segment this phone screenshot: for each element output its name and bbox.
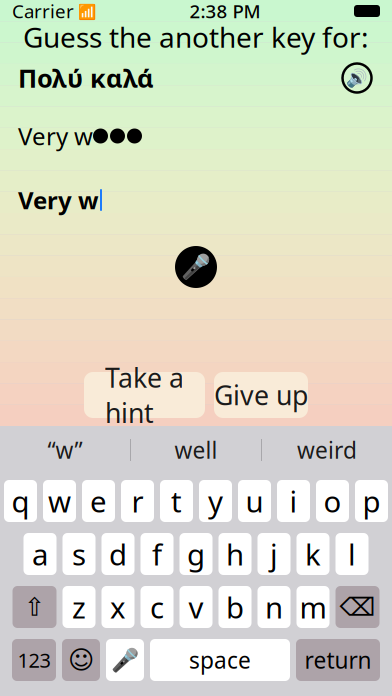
staticText: 📶: [74, 1, 96, 21]
button[interactable]: l: [335, 533, 368, 575]
button[interactable]: c: [140, 586, 173, 628]
button[interactable]: o: [316, 480, 349, 522]
button[interactable]: Delete: [335, 586, 379, 628]
button[interactable]: return: [296, 639, 380, 681]
button[interactable]: a: [23, 533, 56, 575]
staticText: h: [226, 534, 244, 573]
staticText: weird: [297, 435, 357, 465]
button[interactable]: weird: [262, 426, 392, 474]
button[interactable]: space: [150, 639, 290, 681]
button[interactable]: j: [257, 533, 290, 575]
button[interactable]: e: [82, 480, 115, 522]
staticText: w: [48, 481, 71, 520]
button[interactable]: r: [121, 480, 154, 522]
staticText: 🔊: [346, 68, 368, 88]
button[interactable]: 123: [12, 639, 56, 681]
staticText: well: [174, 435, 217, 465]
button[interactable]: p: [355, 480, 388, 522]
staticText: Very w: [18, 184, 99, 216]
staticText: o: [323, 481, 341, 520]
staticText: q: [11, 481, 29, 520]
button[interactable]: w: [43, 480, 76, 522]
button[interactable]: well: [131, 426, 261, 474]
staticText: y: [208, 481, 223, 520]
staticText: j: [270, 534, 278, 573]
staticText: ⇧: [24, 593, 45, 621]
button[interactable]: t: [160, 480, 193, 522]
staticText: ⌫: [339, 593, 375, 621]
staticText: x: [110, 587, 126, 626]
button[interactable]: v: [179, 586, 212, 628]
staticText: v: [188, 587, 203, 626]
button[interactable]: Shift: [12, 586, 56, 628]
staticText: return: [304, 645, 371, 675]
button[interactable]: Dictation: [106, 639, 144, 681]
button[interactable]: f: [140, 533, 173, 575]
staticText: m: [299, 587, 326, 626]
button[interactable]: Emoji: [62, 639, 100, 681]
staticText: Take a hint: [105, 360, 184, 430]
button[interactable]: Record answer: [172, 243, 220, 291]
staticText: s: [72, 534, 86, 573]
staticText: 2:38 PM: [189, 0, 260, 23]
staticText: z: [72, 587, 86, 626]
staticText: 🎤: [181, 253, 211, 281]
staticText: t: [171, 481, 182, 520]
staticText: f: [152, 534, 162, 573]
button[interactable]: b: [218, 586, 251, 628]
staticText: n: [265, 587, 283, 626]
staticText: k: [305, 534, 321, 573]
staticText: Very w: [18, 120, 93, 152]
button[interactable]: m: [296, 586, 329, 628]
button[interactable]: Take a hint: [84, 372, 205, 418]
button[interactable]: n: [257, 586, 290, 628]
staticText: u: [245, 481, 263, 520]
staticText: e: [90, 481, 107, 520]
staticText: g: [187, 534, 205, 573]
staticText: r: [131, 481, 143, 520]
staticText: d: [109, 534, 127, 573]
button[interactable]: Play pronunciation: [340, 61, 374, 95]
staticText: Guess the another key for:: [23, 18, 369, 56]
staticText: Πολύ καλά: [18, 61, 154, 95]
staticText: Give up: [214, 377, 308, 413]
staticText: p: [362, 481, 380, 520]
button[interactable]: x: [101, 586, 134, 628]
button[interactable]: u: [238, 480, 271, 522]
button[interactable]: s: [62, 533, 95, 575]
button[interactable]: q: [4, 480, 37, 522]
button[interactable]: d: [101, 533, 134, 575]
button[interactable]: “w”: [0, 426, 130, 474]
button[interactable]: g: [179, 533, 212, 575]
staticText: ☺: [68, 646, 94, 674]
staticText: l: [348, 534, 356, 573]
staticText: space: [189, 645, 251, 675]
staticText: “w”: [47, 435, 82, 465]
button[interactable]: z: [62, 586, 95, 628]
staticText: Carrier: [12, 0, 74, 23]
staticText: 123: [17, 647, 50, 673]
staticText: i: [289, 481, 297, 520]
button[interactable]: h: [218, 533, 251, 575]
staticText: 🎤: [111, 647, 139, 673]
button[interactable]: k: [296, 533, 329, 575]
staticText: b: [226, 587, 244, 626]
button[interactable]: Give up: [214, 372, 308, 418]
button[interactable]: y: [199, 480, 232, 522]
staticText: c: [150, 587, 164, 626]
staticText: a: [32, 534, 48, 573]
button[interactable]: i: [277, 480, 310, 522]
